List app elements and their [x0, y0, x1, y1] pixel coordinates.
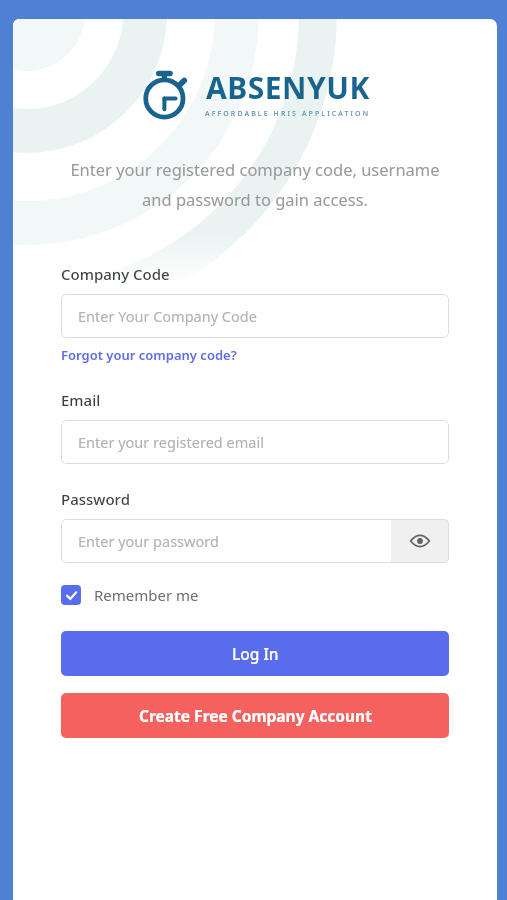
button[interactable]: Enter your password — [61, 519, 391, 563]
staticText: Log In — [232, 643, 279, 664]
staticText: ABSENYUK — [206, 67, 370, 108]
staticText: AFFORDABLE HRIS APPLICATION — [205, 109, 371, 119]
staticText: Company Code — [61, 264, 170, 284]
staticText: Forgot your company code? — [61, 346, 237, 364]
button[interactable]: Enter Your Company Code — [61, 294, 449, 338]
button[interactable]: Remember me — [61, 585, 199, 605]
staticText: Enter your registered email — [78, 432, 264, 452]
button[interactable]: Forgot your company code? — [61, 346, 237, 364]
staticText: Remember me — [94, 585, 199, 605]
staticText: Password — [61, 489, 130, 509]
staticText: Enter Your Company Code — [78, 306, 257, 326]
button[interactable]: Create Free Company Account — [61, 693, 449, 738]
button[interactable]: Enter your registered email — [61, 420, 449, 464]
staticText: Create Free Company Account — [139, 705, 372, 726]
staticText: Email — [61, 390, 101, 410]
button[interactable]: Show password — [391, 519, 449, 563]
button[interactable]: Log In — [61, 631, 449, 676]
staticText: Enter your registered company code, user… — [69, 158, 441, 210]
staticText: Enter your password — [78, 531, 219, 551]
